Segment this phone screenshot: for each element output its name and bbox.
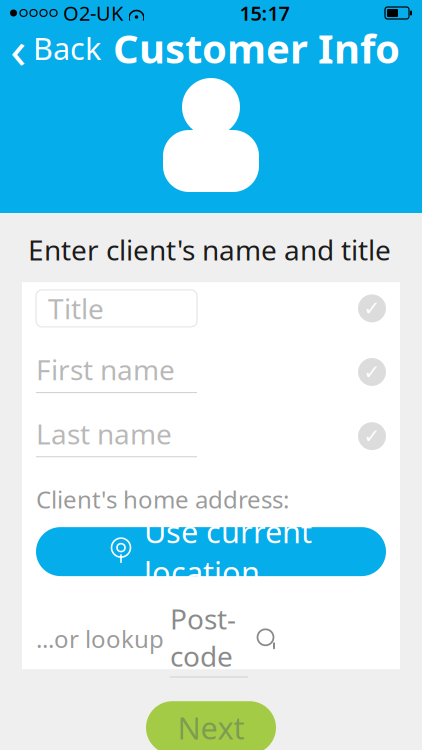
staticText: Last name xyxy=(36,415,172,452)
staticText: ...or lookup xyxy=(36,623,170,655)
staticText: Title xyxy=(48,290,104,327)
staticText: Use current location xyxy=(144,511,312,592)
staticText: Enter client's name and title xyxy=(28,231,391,268)
staticText: Customer Info xyxy=(113,21,400,74)
staticText: ✓ xyxy=(363,425,380,447)
staticText: Next xyxy=(177,707,244,748)
staticText: 15:17 xyxy=(239,0,289,26)
staticText: O2-UK xyxy=(63,0,123,26)
button[interactable]: Postcode xyxy=(170,600,278,677)
staticText: ‹ xyxy=(10,13,27,83)
staticText: ✓ xyxy=(363,361,380,383)
button[interactable]: Next xyxy=(146,701,276,750)
button[interactable]: ‹ xyxy=(0,26,107,70)
staticText: Postcode xyxy=(170,600,240,674)
button[interactable]: Use current location xyxy=(36,527,386,576)
staticText: Client's home address: xyxy=(36,483,289,515)
staticText: Back xyxy=(33,28,101,68)
staticText: First name xyxy=(36,351,175,388)
staticText: ✓ xyxy=(363,297,380,320)
